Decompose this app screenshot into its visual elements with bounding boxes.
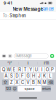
button[interactable]: K bbox=[42, 73, 47, 79]
staticText: A bbox=[5, 73, 8, 79]
button[interactable]: D bbox=[15, 73, 19, 79]
staticText: U bbox=[35, 67, 38, 72]
button[interactable]: G bbox=[26, 73, 30, 79]
staticText: ⇧ bbox=[3, 80, 7, 85]
staticText: G bbox=[26, 73, 29, 79]
button[interactable]: return bbox=[42, 86, 51, 92]
staticText: N bbox=[37, 80, 40, 85]
button[interactable]: C bbox=[20, 80, 25, 85]
staticText: ⌫ bbox=[48, 80, 53, 85]
staticText: C bbox=[21, 80, 24, 85]
button[interactable]: A bbox=[4, 73, 8, 79]
button[interactable]: M bbox=[42, 80, 47, 85]
staticText: I'm bbox=[44, 61, 49, 66]
staticText: W bbox=[7, 67, 11, 72]
staticText: I bbox=[41, 67, 42, 72]
button[interactable]: ☺ bbox=[12, 86, 17, 92]
staticText: Q bbox=[2, 67, 5, 72]
staticText: Z bbox=[10, 80, 13, 85]
button[interactable]: U bbox=[34, 67, 39, 72]
staticText: M bbox=[42, 80, 46, 85]
button[interactable]: I bbox=[39, 67, 44, 72]
button[interactable]: Apps bbox=[8, 54, 12, 58]
staticText: New Message bbox=[12, 6, 43, 12]
staticText: Cancel bbox=[41, 6, 54, 12]
button[interactable]: R bbox=[17, 67, 22, 72]
button[interactable]: space bbox=[18, 86, 41, 92]
button[interactable]: X bbox=[15, 80, 19, 85]
button[interactable]: Cancel bbox=[38, 6, 56, 12]
staticText: D bbox=[16, 73, 19, 79]
staticText: return bbox=[42, 87, 51, 91]
button[interactable]: Y bbox=[28, 67, 33, 72]
staticText: space bbox=[24, 87, 34, 91]
staticText: L bbox=[49, 73, 51, 79]
button[interactable]: S bbox=[9, 73, 14, 79]
button[interactable]: Camera bbox=[2, 54, 6, 58]
button[interactable]: V bbox=[26, 80, 30, 85]
staticText: ☺ bbox=[13, 87, 17, 91]
button[interactable]: Z bbox=[9, 80, 14, 85]
staticText: T bbox=[24, 67, 27, 72]
staticText: V bbox=[26, 80, 29, 85]
staticText: 9:41 bbox=[4, 1, 13, 5]
button[interactable]: Q bbox=[1, 67, 6, 72]
staticText: H bbox=[32, 73, 35, 79]
staticText: iMessage bbox=[16, 54, 32, 58]
button[interactable]: ⌫ bbox=[47, 80, 54, 85]
button[interactable]: T bbox=[23, 67, 28, 72]
staticText: J bbox=[38, 73, 40, 79]
button[interactable]: F bbox=[20, 73, 25, 79]
staticText: Y bbox=[29, 67, 32, 72]
staticText: Stephen bbox=[9, 13, 27, 18]
button[interactable]: B bbox=[31, 80, 36, 85]
staticText: S bbox=[10, 73, 13, 79]
staticText: B bbox=[32, 80, 35, 85]
staticText: X bbox=[16, 80, 19, 85]
button[interactable]: E bbox=[12, 67, 17, 72]
button[interactable]: O bbox=[45, 67, 49, 72]
button[interactable]: Send bbox=[50, 54, 54, 58]
staticText: P bbox=[51, 67, 54, 72]
staticText: R bbox=[18, 67, 21, 72]
button[interactable]: H bbox=[31, 73, 36, 79]
staticText: To: bbox=[3, 13, 9, 18]
button[interactable]: J bbox=[36, 73, 41, 79]
button[interactable]: W bbox=[6, 67, 11, 72]
staticText: F bbox=[21, 73, 24, 79]
staticText: O bbox=[46, 67, 49, 72]
staticText: “I” bbox=[7, 61, 12, 66]
button[interactable]: N bbox=[36, 80, 41, 85]
button[interactable]: L bbox=[47, 73, 52, 79]
button[interactable]: P bbox=[50, 67, 55, 72]
staticText: 123 bbox=[6, 87, 11, 91]
button[interactable]: 123 bbox=[5, 86, 12, 92]
staticText: E bbox=[13, 67, 16, 72]
button[interactable]: ⇧ bbox=[2, 80, 8, 85]
staticText: K bbox=[43, 73, 46, 79]
